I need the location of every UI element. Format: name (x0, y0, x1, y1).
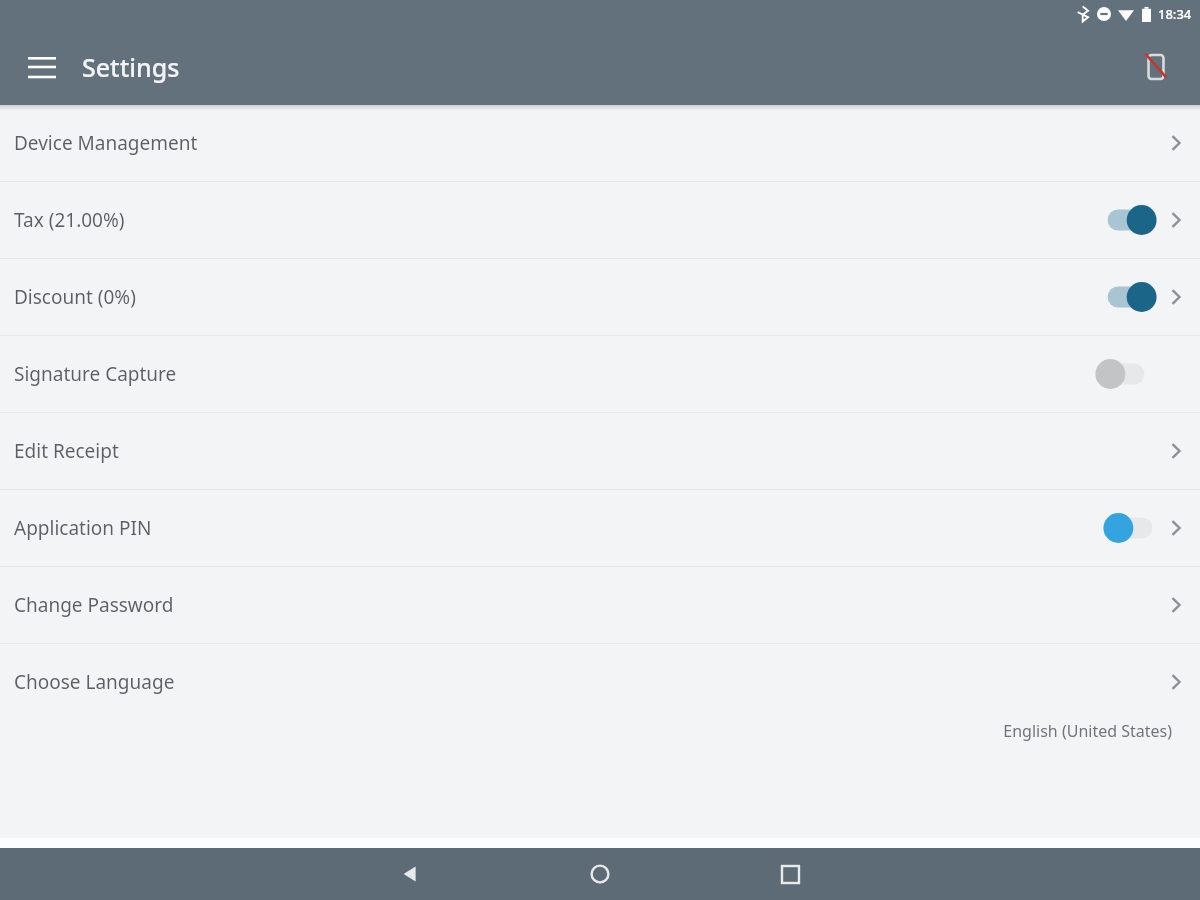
staticText: English (United States) (1003, 720, 1172, 742)
button[interactable]: Device disconnected (1130, 41, 1182, 93)
staticText: Settings (82, 50, 180, 84)
button[interactable]: Toggle (1102, 280, 1158, 314)
staticText: Signature Capture (14, 361, 177, 387)
staticText: 18:34 (1158, 5, 1192, 23)
button[interactable]: Change Password (0, 567, 1200, 643)
button[interactable]: Discount (0%) (0, 259, 1200, 335)
staticText: Device Management (14, 130, 198, 156)
button[interactable]: Home (570, 848, 630, 900)
button[interactable]: Toggle (1102, 511, 1158, 545)
button[interactable]: Back (380, 848, 440, 900)
staticText: Tax (21.00%) (14, 207, 125, 233)
staticText: Application PIN (14, 515, 152, 541)
button[interactable]: Toggle (1102, 203, 1158, 237)
staticText: Change Password (14, 592, 174, 618)
staticText: Choose Language (14, 669, 175, 695)
staticText: Edit Receipt (14, 438, 119, 464)
button[interactable]: Tax (21.00%) (0, 182, 1200, 258)
button[interactable]: Edit Receipt (0, 413, 1200, 489)
button[interactable]: Application PIN (0, 490, 1200, 566)
button[interactable]: Device Management (0, 105, 1200, 181)
button[interactable]: Signature Capture (0, 336, 1200, 412)
button[interactable]: Toggle (1094, 357, 1150, 391)
button[interactable]: Recent apps (760, 848, 820, 900)
button[interactable]: Open navigation menu (14, 39, 70, 95)
staticText: Discount (0%) (14, 284, 136, 310)
button[interactable]: Choose Language (0, 644, 1200, 742)
